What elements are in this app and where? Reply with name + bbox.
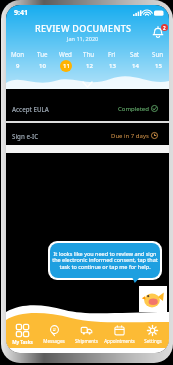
button[interactable]: Shipments [70, 321, 103, 348]
staticText: Shipments [75, 338, 98, 344]
staticText: Thu [83, 50, 95, 58]
button[interactable]: Appointments [103, 321, 136, 348]
staticText: My Tasks [12, 339, 33, 345]
button[interactable]: It looks like you need to review and sig… [50, 243, 160, 278]
button[interactable]: Sat [123, 50, 146, 72]
staticText: REVIEW DOCUMENTS [35, 22, 132, 34]
button[interactable]: Thu [77, 50, 100, 72]
staticText: 10 [39, 62, 46, 70]
button[interactable]: Wed [54, 50, 77, 72]
staticText: Wed [59, 50, 72, 58]
staticText: Mon [11, 50, 25, 58]
staticText: Completed [118, 105, 149, 113]
staticText: Sat [130, 50, 140, 58]
staticText: 11 [63, 62, 70, 70]
button[interactable]: Settings [136, 321, 169, 348]
button[interactable]: Messages [38, 321, 70, 348]
staticText: 13 [109, 62, 116, 70]
button[interactable]: Notifications [147, 21, 169, 43]
staticText: Settings [144, 338, 162, 344]
staticText: Messages [43, 338, 65, 344]
button[interactable]: Help assistant [139, 286, 167, 312]
staticText: 14 [132, 62, 139, 70]
staticText: Jan 11, 2020 [67, 35, 99, 42]
staticText: 12 [86, 62, 93, 70]
button[interactable]: Sign e-IC [6, 123, 169, 145]
staticText: Accept EULA [12, 105, 49, 113]
staticText: 9 [16, 62, 20, 70]
button[interactable]: Mon [6, 50, 30, 72]
staticText: Appointments [104, 338, 135, 344]
button[interactable]: Fri [100, 50, 123, 72]
button[interactable]: Tue [30, 50, 54, 72]
staticText: Sun [152, 50, 164, 58]
button[interactable]: Accept EULA [6, 89, 169, 121]
button[interactable]: Sun [146, 50, 169, 72]
button[interactable]: My Tasks [6, 321, 38, 348]
staticText: 15 [155, 62, 162, 70]
staticText: Due in 7 days [111, 132, 149, 140]
staticText: Sign e-IC [12, 132, 39, 140]
staticText: 2 [163, 25, 166, 31]
staticText: Fri [108, 50, 116, 58]
staticText: 9:41 [14, 8, 28, 18]
staticText: It looks like you need to review and sig… [50, 250, 160, 271]
staticText: Tue [37, 50, 48, 58]
